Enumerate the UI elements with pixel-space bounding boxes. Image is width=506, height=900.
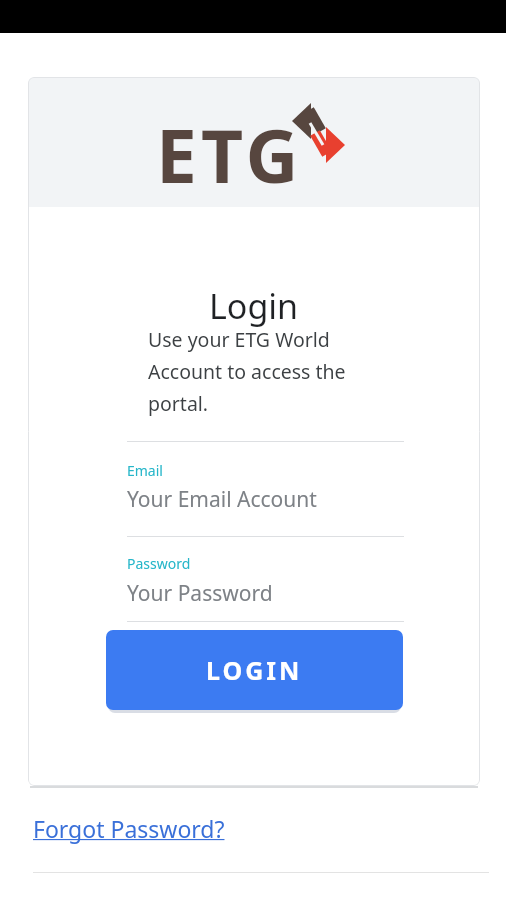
- button[interactable]: LOGIN: [106, 630, 403, 710]
- staticText: Your Email Account: [127, 485, 317, 514]
- button[interactable]: Email: [127, 461, 404, 536]
- button[interactable]: Password: [127, 554, 404, 621]
- staticText: Account to access the: [148, 358, 346, 385]
- staticText: ETG: [156, 105, 303, 204]
- staticText: Forgot Password?: [33, 813, 225, 844]
- staticText: Password: [127, 554, 191, 573]
- staticText: Your Password: [127, 579, 273, 608]
- staticText: Use your ETG World: [148, 326, 330, 353]
- staticText: Login: [209, 283, 299, 329]
- staticText: portal.: [148, 390, 209, 417]
- staticText: Email: [127, 461, 163, 480]
- staticText: LOGIN: [206, 653, 303, 687]
- button[interactable]: Forgot Password?: [33, 813, 225, 844]
